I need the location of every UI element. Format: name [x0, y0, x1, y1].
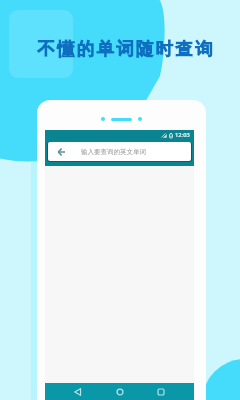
- button[interactable]: Back: [48, 142, 191, 161]
- button[interactable]: Recents: [152, 383, 170, 400]
- button[interactable]: Back: [69, 383, 87, 400]
- other: Back: [57, 148, 66, 156]
- staticText: 不懂的单词随时查询: [6, 38, 240, 60]
- staticText: 输入要查询的英文单词: [81, 148, 146, 156]
- button[interactable]: Home: [111, 383, 129, 400]
- staticText: 12:03: [175, 131, 190, 139]
